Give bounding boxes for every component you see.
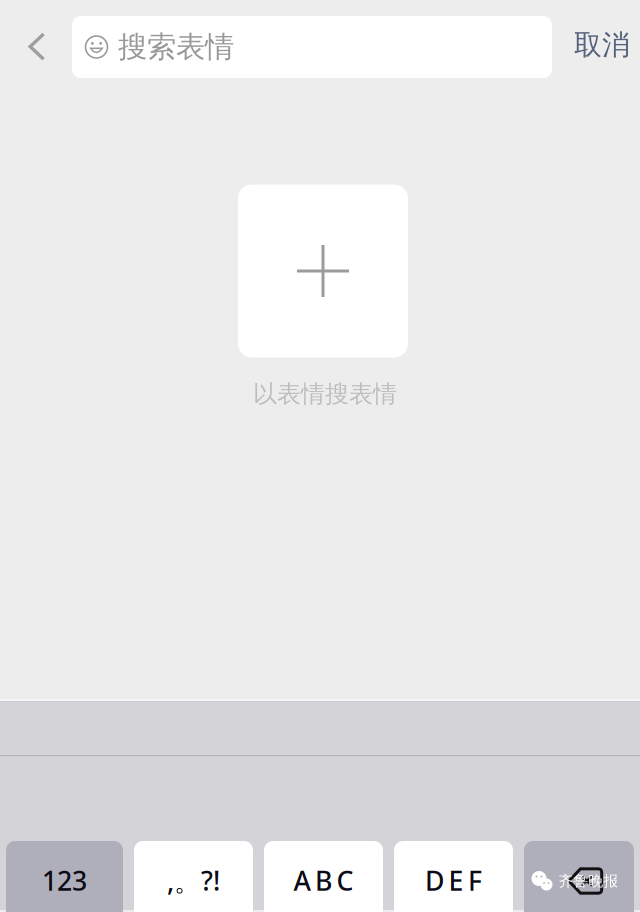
staticText: 取消 [574,28,630,62]
button[interactable]: Search stickers by emoji [238,184,408,357]
button[interactable]: 搜索表情 [72,16,552,78]
button[interactable]: ABC [264,841,383,912]
staticText: 以表情搜表情 [253,379,397,409]
staticText: ABC [293,863,353,898]
button[interactable]: 123 [6,841,123,912]
staticText: 齐鲁晚报 [558,872,618,890]
staticText: 123 [42,863,87,898]
button[interactable]: Back [6,16,68,78]
staticText: 搜索表情 [118,29,234,65]
staticText: DEF [425,863,482,898]
button[interactable]: ,。?! [134,841,253,912]
staticText: ,。?! [167,863,220,898]
button[interactable]: Delete [524,841,634,912]
button[interactable]: 取消 [557,14,640,76]
button[interactable]: DEF [394,841,513,912]
